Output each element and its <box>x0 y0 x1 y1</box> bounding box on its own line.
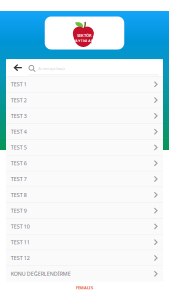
button[interactable]: TEST 8 <box>6 187 163 202</box>
staticText: KONU DEĞERLENDİRME <box>11 270 71 277</box>
staticText: TEST 10 <box>11 223 30 230</box>
button[interactable]: TEST 4 <box>6 124 163 139</box>
staticText: TEST 11 <box>11 239 30 246</box>
staticText: FEMALIS <box>76 285 93 290</box>
staticText: TEST 2 <box>11 96 27 104</box>
button[interactable]: TEST 12 <box>6 250 163 266</box>
button[interactable]: Search <box>28 59 159 76</box>
button[interactable]: TEST 5 <box>6 140 163 155</box>
button[interactable]: KONU DEĞERLENDİRME <box>6 266 163 281</box>
staticText: TEST 3 <box>11 112 27 119</box>
button[interactable]: TEST 11 <box>6 235 163 250</box>
staticText: Aramaya başla <box>38 66 65 71</box>
button[interactable]: TEST 1 <box>6 77 163 92</box>
button[interactable]: TEST 7 <box>6 171 163 187</box>
button[interactable]: TEST 6 <box>6 156 163 171</box>
staticText: TEST 12 <box>11 254 30 261</box>
staticText: TEST 4 <box>11 128 27 135</box>
staticText: YAYINLARI <box>73 38 96 43</box>
button[interactable]: TEST 2 <box>6 92 163 108</box>
staticText: TEST 5 <box>11 144 27 151</box>
staticText: TEST 6 <box>11 160 27 167</box>
staticText: TEST 7 <box>11 175 27 183</box>
staticText: TEST 1 <box>11 81 27 88</box>
staticText: TEST 8 <box>11 191 27 198</box>
staticText: TEST 9 <box>11 207 27 214</box>
button[interactable]: TEST 3 <box>6 108 163 123</box>
staticText: SEKTÖR <box>77 33 92 38</box>
button[interactable]: Back <box>8 59 28 76</box>
button[interactable]: TEST 10 <box>6 219 163 234</box>
button[interactable]: TEST 9 <box>6 203 163 218</box>
